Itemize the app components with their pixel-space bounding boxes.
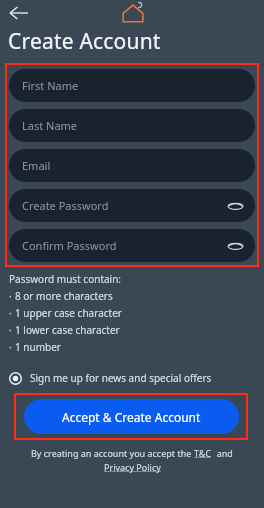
staticText: 1 lower case character <box>15 323 120 337</box>
staticText: 1 upper case character <box>15 306 122 320</box>
staticText: · <box>9 323 12 337</box>
staticText: Password must contain: <box>9 272 122 286</box>
staticText: Last Name <box>22 118 78 133</box>
button[interactable]: Privacy Policy <box>104 461 161 473</box>
staticText: · <box>9 306 12 320</box>
staticText: First Name <box>22 78 79 93</box>
staticText: · <box>9 289 12 303</box>
button[interactable]: Create Password <box>9 189 255 222</box>
button[interactable]: T&C <box>194 447 212 459</box>
button[interactable]: First Name <box>9 69 255 102</box>
button[interactable]: Back <box>4 1 34 25</box>
staticText: Create Password <box>22 198 109 213</box>
staticText: 8 or more characters <box>15 289 113 303</box>
staticText: By creating an account you accept the <box>31 447 194 459</box>
staticText: Confirm Password <box>22 238 117 253</box>
button[interactable]: Last Name <box>9 109 255 142</box>
staticText: Sign me up for news and special offers <box>30 371 212 385</box>
button[interactable]: Sign me up for news and special offers <box>7 368 212 388</box>
staticText: T&C <box>194 447 212 459</box>
staticText: · <box>9 340 12 354</box>
staticText: Create Account <box>8 27 161 56</box>
staticText: and <box>212 447 233 459</box>
button[interactable]: Email <box>9 149 255 182</box>
button[interactable]: Accept & Create Account <box>24 399 239 434</box>
button[interactable]: Show password <box>226 237 244 255</box>
staticText: 1 number <box>15 340 61 354</box>
staticText: Accept & Create Account <box>62 409 201 425</box>
staticText: Email <box>22 158 51 173</box>
button[interactable]: Show password <box>226 197 244 215</box>
staticText: Privacy Policy <box>104 461 161 473</box>
button[interactable]: Confirm Password <box>9 229 255 262</box>
